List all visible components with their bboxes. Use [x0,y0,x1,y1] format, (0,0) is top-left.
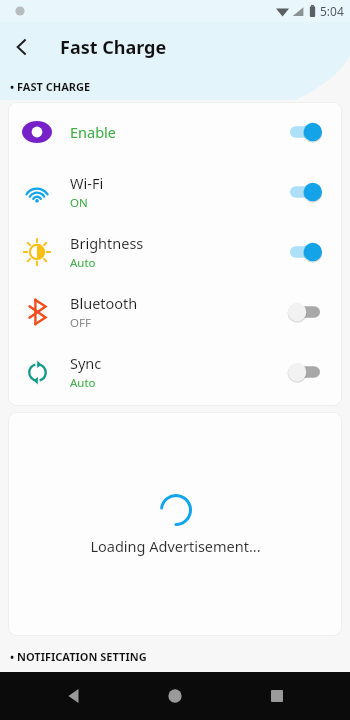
button[interactable]: Bluetooth [8,282,342,342]
button[interactable]: Toggle on [282,119,328,145]
button[interactable]: Toggle on [282,239,328,265]
staticText: Bluetooth [70,293,138,313]
button[interactable]: Recents [249,672,305,720]
staticText: ON [70,195,88,211]
staticText: 5:04 [320,3,344,19]
staticText: Sync [70,353,102,373]
staticText: Enable [70,122,116,142]
button[interactable]: Enable [8,102,342,162]
staticText: Wi-Fi [70,173,104,193]
button[interactable]: Toggle off [282,299,328,325]
staticText: Fast Charge [60,35,167,60]
staticText: • [10,79,17,94]
staticText: Loading Advertisement... [90,536,261,556]
button[interactable]: Toggle on [282,179,328,205]
button[interactable]: Back [0,25,44,69]
button[interactable]: Back [46,672,102,720]
staticText: Auto [70,375,96,391]
staticText: Auto [70,255,96,271]
staticText: OFF [70,315,91,331]
staticText: • [10,649,17,664]
button[interactable]: Toggle off [282,359,328,385]
staticText: NOTIFICATION SETTING [17,649,147,664]
button[interactable]: Brightness [8,222,342,282]
staticText: FAST CHARGE [17,79,91,94]
button[interactable]: Sync [8,342,342,402]
button[interactable]: Wi-Fi [8,162,342,222]
button[interactable]: Home [147,672,203,720]
staticText: Brightness [70,233,144,253]
